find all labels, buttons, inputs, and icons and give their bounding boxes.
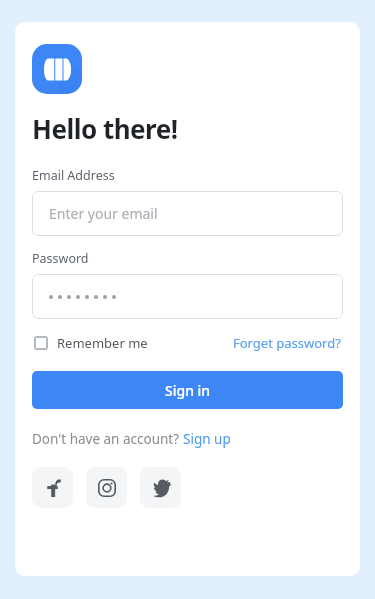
staticText: Remember me [57, 334, 148, 352]
button[interactable]: Remember me [32, 331, 150, 355]
button[interactable] [32, 274, 343, 319]
staticText: Enter your email [49, 204, 158, 223]
staticText: Sign in [165, 381, 211, 400]
button[interactable]: Sign in with Facebook [32, 467, 73, 508]
staticText: Email Address [32, 167, 115, 184]
staticText: Password [32, 250, 89, 267]
button[interactable]: Sign in [32, 371, 343, 409]
staticText: Hello there! [32, 111, 178, 146]
staticText: Sign up [183, 430, 231, 448]
button[interactable]: Forget password? [231, 331, 343, 355]
button[interactable]: Sign in with Instagram [86, 467, 127, 508]
staticText: Forget password? [233, 334, 341, 352]
button[interactable]: Sign in with Twitter [140, 467, 181, 508]
staticText: Don't have an account? [32, 430, 183, 448]
button[interactable]: Enter your email [32, 191, 343, 236]
button[interactable]: Sign up [183, 430, 231, 448]
